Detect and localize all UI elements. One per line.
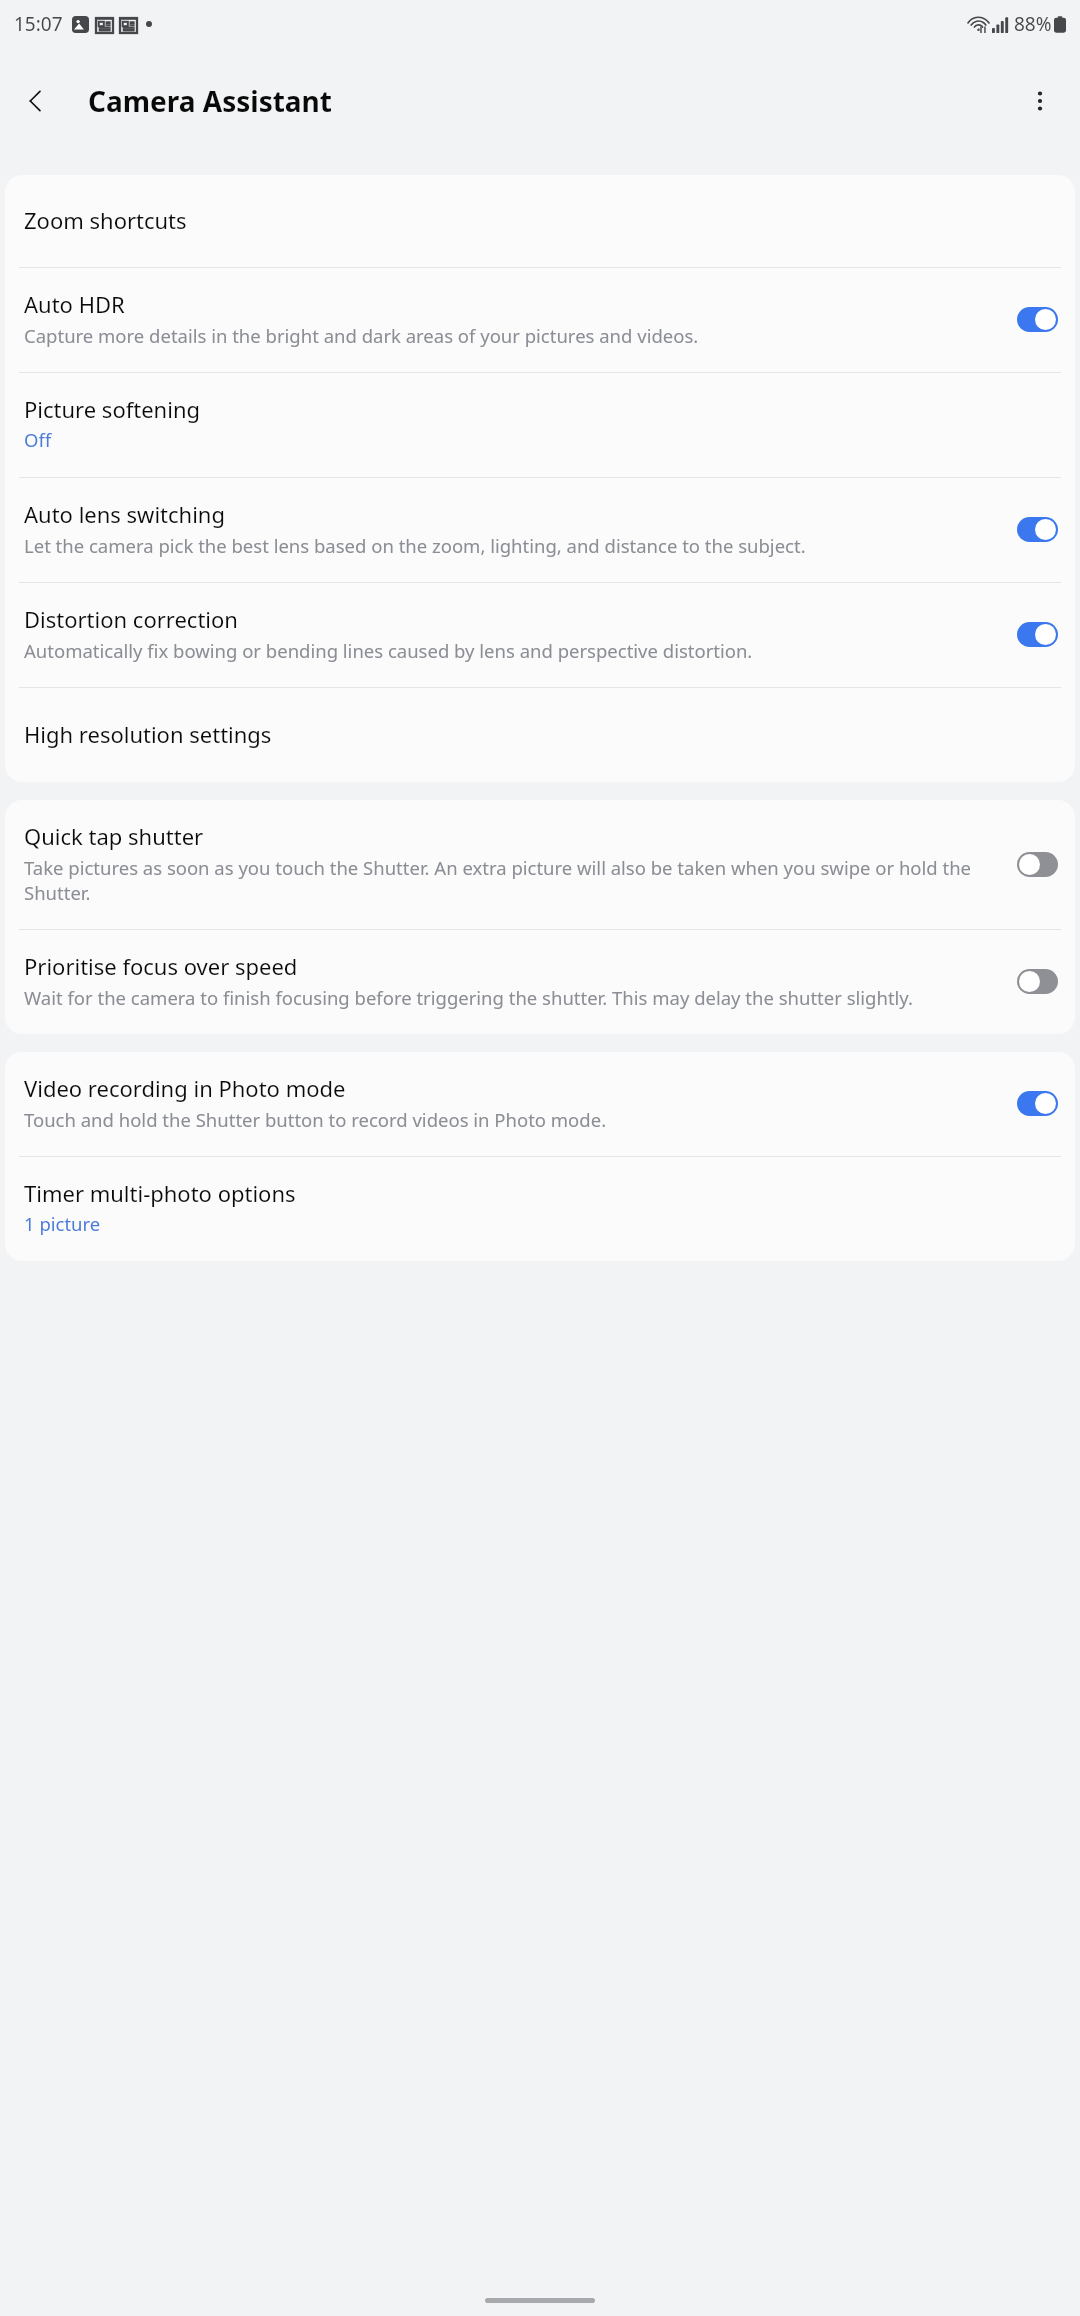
button[interactable]: High resolution settings <box>5 688 1075 782</box>
button[interactable]: More options <box>1012 73 1068 129</box>
staticText: Wait for the camera to finish focusing b… <box>24 985 914 1010</box>
button[interactable]: On <box>1017 307 1058 332</box>
staticText: 88% <box>1014 11 1052 37</box>
staticText: Automatically fix bowing or bending line… <box>24 638 753 663</box>
staticText: 1 picture <box>24 1211 101 1236</box>
staticText: Prioritise focus over speed <box>24 953 298 981</box>
button[interactable]: Distortion correction <box>5 583 1075 687</box>
staticText: Let the camera pick the best lens based … <box>24 533 806 558</box>
button[interactable]: On <box>1017 517 1058 542</box>
staticText: 15:07 <box>14 11 63 37</box>
staticText: Take pictures as soon as you touch the S… <box>24 855 1003 905</box>
button[interactable]: Off <box>1017 969 1058 994</box>
button[interactable]: Picture softening <box>5 373 1075 477</box>
button[interactable]: Video recording in Photo mode <box>5 1052 1075 1156</box>
button[interactable]: Off <box>1017 852 1058 877</box>
staticText: Timer multi-photo options <box>24 1180 296 1208</box>
staticText: Picture softening <box>24 396 201 424</box>
button[interactable]: Quick tap shutter <box>5 800 1075 929</box>
button[interactable]: On <box>1017 1091 1058 1116</box>
staticText: Off <box>24 427 52 452</box>
staticText: Capture more details in the bright and d… <box>24 323 699 348</box>
staticText: Camera Assistant <box>88 82 332 120</box>
button[interactable]: Auto HDR <box>5 268 1075 372</box>
staticText: Distortion correction <box>24 606 238 634</box>
button[interactable]: Zoom shortcuts <box>5 175 1075 267</box>
staticText: Auto HDR <box>24 291 125 319</box>
button[interactable]: Timer multi-photo options <box>5 1157 1075 1261</box>
button[interactable]: Prioritise focus over speed <box>5 930 1075 1034</box>
button[interactable]: On <box>1017 622 1058 647</box>
button[interactable]: Back <box>8 73 64 129</box>
staticText: High resolution settings <box>24 721 272 749</box>
staticText: Quick tap shutter <box>24 823 204 851</box>
button[interactable]: Auto lens switching <box>5 478 1075 582</box>
staticText: Touch and hold the Shutter button to rec… <box>24 1107 607 1132</box>
staticText: Auto lens switching <box>24 501 225 529</box>
staticText: Zoom shortcuts <box>24 207 187 235</box>
staticText: Video recording in Photo mode <box>24 1075 346 1103</box>
